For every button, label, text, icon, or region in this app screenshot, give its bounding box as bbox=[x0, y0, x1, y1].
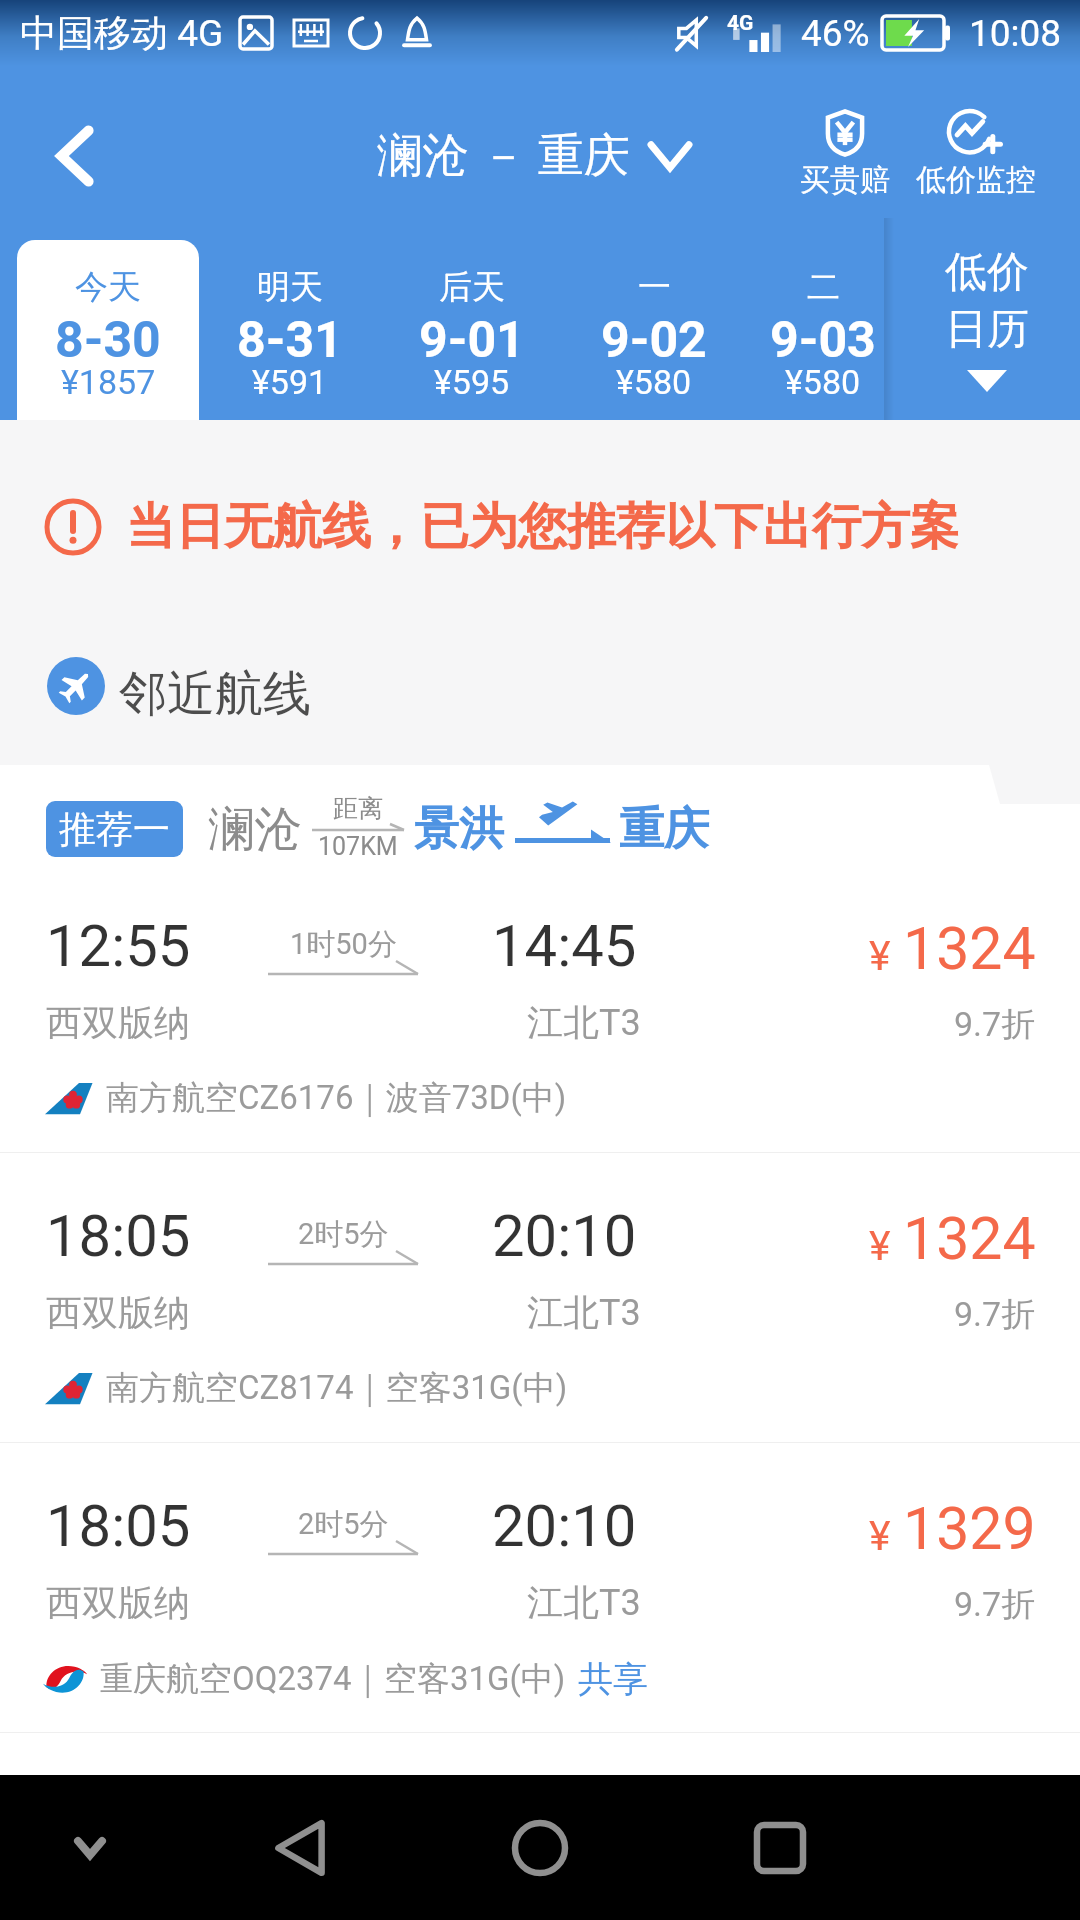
button[interactable]: 澜沧 － 重庆 bbox=[377, 127, 692, 185]
staticText: 重庆航空OQ2374｜空客31G(中) bbox=[100, 1658, 566, 1700]
staticText: 107KM bbox=[318, 832, 398, 861]
staticText: 二 bbox=[807, 266, 840, 308]
staticText: ¥595 bbox=[434, 362, 510, 402]
staticText: 江北T3 bbox=[527, 1290, 641, 1335]
button[interactable]: Back bbox=[255, 1803, 345, 1893]
staticText: 46% bbox=[801, 12, 870, 55]
staticText: 买贵赔 bbox=[800, 161, 890, 199]
button[interactable]: 二 bbox=[745, 240, 884, 420]
staticText: 1329 bbox=[903, 1494, 1036, 1563]
staticText: 西双版纳 bbox=[46, 1290, 190, 1335]
button[interactable]: 明天 bbox=[199, 240, 381, 420]
staticText: 9.7折 bbox=[954, 1003, 1036, 1046]
button[interactable]: Recent apps bbox=[735, 1803, 825, 1893]
button[interactable]: 买贵赔 bbox=[800, 110, 890, 199]
staticText: 9.7折 bbox=[954, 1293, 1036, 1336]
button[interactable]: 12:55 bbox=[0, 863, 1080, 1152]
staticText: 共享 bbox=[578, 1657, 648, 1701]
staticText: 江北T3 bbox=[527, 1580, 641, 1625]
staticText: 9-03 bbox=[770, 311, 876, 370]
staticText: 1324 bbox=[903, 1204, 1036, 1273]
button[interactable]: 18:05 bbox=[0, 1443, 1080, 1732]
staticText: 4G bbox=[727, 11, 754, 36]
button[interactable]: 推荐一 bbox=[46, 801, 183, 857]
staticText: 14:45 bbox=[492, 912, 637, 980]
staticText: 2时5分 bbox=[298, 1506, 389, 1543]
button[interactable]: Home bbox=[495, 1803, 585, 1893]
staticText: 9-02 bbox=[601, 311, 707, 370]
staticText: 江北T3 bbox=[527, 1000, 641, 1045]
button[interactable]: 后天 bbox=[381, 240, 563, 420]
button[interactable]: Back bbox=[0, 80, 150, 232]
staticText: 邻近航线 bbox=[119, 664, 311, 724]
staticText: 后天 bbox=[439, 266, 505, 308]
staticText: 澜沧 bbox=[208, 800, 302, 859]
staticText: 中国移动 4G bbox=[20, 10, 224, 57]
staticText: 今天 bbox=[75, 266, 141, 308]
button[interactable]: 18:05 bbox=[0, 1153, 1080, 1442]
staticText: 9.7折 bbox=[954, 1583, 1036, 1626]
staticText: ¥ bbox=[869, 1222, 891, 1270]
staticText: 南方航空CZ8174｜空客31G(中) bbox=[106, 1367, 568, 1409]
staticText: 20:10 bbox=[492, 1492, 637, 1560]
staticText: ¥591 bbox=[252, 362, 328, 402]
staticText: 低价 bbox=[945, 246, 1029, 299]
staticText: 12:55 bbox=[46, 912, 191, 980]
staticText: 南方航空CZ6176｜波音73D(中) bbox=[106, 1077, 567, 1119]
staticText: ¥ bbox=[869, 932, 891, 980]
staticText: ¥580 bbox=[616, 362, 692, 402]
button[interactable]: 今天 bbox=[17, 240, 199, 420]
staticText: 18:05 bbox=[46, 1202, 191, 1270]
staticText: 日历 bbox=[945, 303, 1029, 356]
staticText: ¥1857 bbox=[61, 362, 156, 402]
staticText: 澜沧 － 重庆 bbox=[377, 127, 630, 185]
staticText: 10:08 bbox=[969, 12, 1062, 55]
staticText: 推荐一 bbox=[59, 806, 170, 853]
staticText: 2时5分 bbox=[298, 1216, 389, 1253]
staticText: 低价监控 bbox=[916, 161, 1036, 199]
staticText: ¥ bbox=[869, 1512, 891, 1560]
staticText: 1时50分 bbox=[290, 926, 397, 963]
button[interactable]: 低价 bbox=[894, 218, 1080, 420]
button[interactable]: 低价监控 bbox=[916, 110, 1036, 199]
staticText: 20:10 bbox=[492, 1202, 637, 1270]
button[interactable]: Hide keyboard bbox=[50, 1808, 130, 1888]
staticText: 距离 bbox=[333, 793, 383, 824]
button[interactable]: 一 bbox=[563, 240, 745, 420]
staticText: 1324 bbox=[903, 914, 1036, 983]
staticText: 景洪 bbox=[414, 801, 504, 858]
staticText: 8-30 bbox=[55, 311, 161, 370]
staticText: 明天 bbox=[257, 266, 323, 308]
staticText: 8-31 bbox=[237, 311, 343, 370]
staticText: 一 bbox=[638, 266, 671, 308]
staticText: 当日无航线，已为您推荐以下出行方案 bbox=[126, 496, 959, 558]
staticText: 西双版纳 bbox=[46, 1000, 190, 1045]
staticText: 18:05 bbox=[46, 1492, 191, 1560]
staticText: 西双版纳 bbox=[46, 1580, 190, 1625]
staticText: 9-01 bbox=[419, 311, 525, 370]
staticText: 重庆 bbox=[619, 801, 709, 858]
staticText: ¥580 bbox=[785, 362, 861, 402]
